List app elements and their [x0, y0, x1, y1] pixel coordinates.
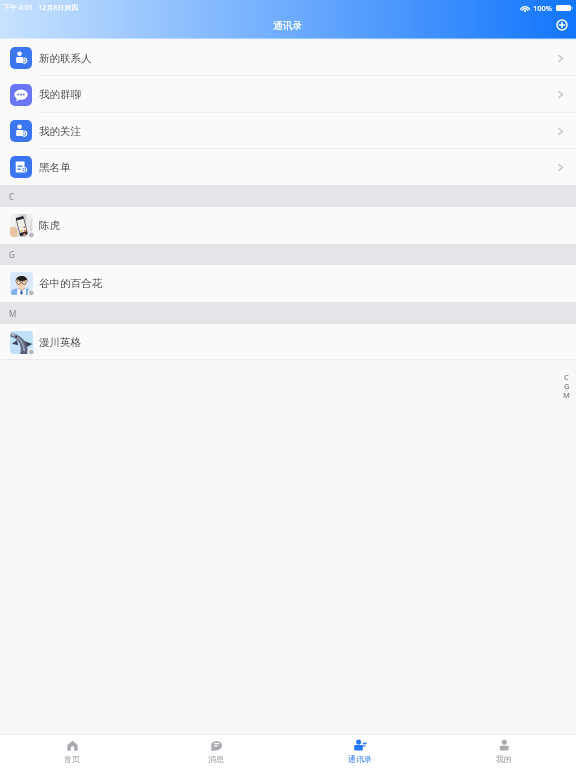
- button[interactable]: 我的关注: [0, 113, 576, 149]
- staticText: 首页: [64, 754, 80, 764]
- staticText: 通讯录: [273, 20, 303, 32]
- staticText: C: [564, 372, 569, 381]
- staticText: 我的关注: [39, 125, 81, 138]
- staticText: M: [9, 308, 17, 319]
- staticText: 谷中的百合花: [39, 277, 102, 290]
- staticText: 我的: [496, 754, 512, 764]
- staticText: G: [564, 381, 570, 390]
- staticText: C: [9, 191, 15, 202]
- staticText: 黑名单: [39, 161, 71, 174]
- staticText: 下午 4:01 12月8日周四: [3, 3, 79, 13]
- staticText: 我的群聊: [39, 88, 81, 101]
- staticText: 漫川英格: [39, 336, 81, 349]
- button[interactable]: 通讯录: [288, 735, 432, 768]
- button[interactable]: 添加联系人: [552, 15, 572, 35]
- button[interactable]: 首页: [0, 735, 144, 768]
- button[interactable]: 我的: [432, 735, 576, 768]
- staticText: G: [9, 249, 15, 260]
- button[interactable]: 我的群聊: [0, 76, 576, 113]
- staticText: 100%: [533, 3, 553, 13]
- button[interactable]: 新的联系人: [0, 40, 576, 76]
- button[interactable]: 漫川英格: [0, 324, 576, 360]
- button[interactable]: 谷中的百合花: [0, 265, 576, 302]
- button[interactable]: 陈虎: [0, 207, 576, 244]
- staticText: 新的联系人: [39, 52, 92, 65]
- staticText: 陈虎: [39, 219, 60, 232]
- button[interactable]: 黑名单: [0, 149, 576, 185]
- staticText: 消息: [208, 754, 224, 764]
- staticText: 通讯录: [348, 754, 372, 764]
- staticText: M: [563, 390, 570, 399]
- button[interactable]: 消息: [144, 735, 288, 768]
